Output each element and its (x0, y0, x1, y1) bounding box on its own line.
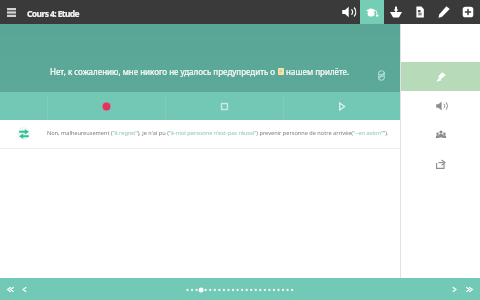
staticText: нашем прилёте. (284, 66, 350, 77)
button[interactable]: Sound (401, 91, 480, 120)
button[interactable]: Highlight (401, 62, 480, 91)
button[interactable]: Share (401, 149, 480, 178)
button[interactable]: Menu (0, 0, 22, 24)
button[interactable]: Next (444, 278, 465, 300)
button[interactable]: Download (384, 0, 408, 24)
button[interactable]: Last (459, 278, 480, 300)
button[interactable]: Layers (373, 67, 389, 83)
button[interactable]: Previous (14, 278, 35, 300)
staticText: Non, malheureusement ("à regret"), je n'… (47, 129, 389, 137)
button[interactable]: Community (401, 120, 480, 149)
button[interactable]: Stop (165, 92, 283, 120)
button[interactable]: Edit (432, 0, 456, 24)
staticText: Cours 4: Etude (27, 8, 80, 20)
button[interactable]: Add (456, 0, 480, 24)
button[interactable]: Document (408, 0, 432, 24)
button[interactable]: Record (47, 92, 165, 120)
button[interactable]: Swap translation (17, 127, 30, 140)
button[interactable]: Sound (336, 0, 360, 24)
button[interactable]: Study (360, 0, 384, 24)
button[interactable]: First (0, 278, 21, 300)
staticText: Нет, к сожалению, мне никого не удалось … (50, 66, 278, 77)
button[interactable]: Play (283, 92, 400, 120)
